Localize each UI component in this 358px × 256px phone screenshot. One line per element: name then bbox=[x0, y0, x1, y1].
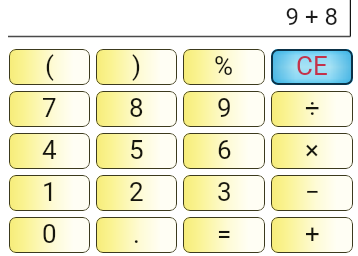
button[interactable]: 9 bbox=[183, 91, 265, 127]
staticText: 9 + 8 bbox=[285, 3, 338, 31]
staticText: 0 bbox=[42, 219, 57, 249]
staticText: × bbox=[305, 135, 319, 165]
staticText: 8 bbox=[129, 93, 144, 123]
staticText: + bbox=[305, 219, 320, 249]
button[interactable]: 1 bbox=[9, 175, 90, 211]
staticText: ) bbox=[132, 51, 142, 81]
staticText: 6 bbox=[217, 135, 232, 165]
button[interactable]: 7 bbox=[9, 91, 90, 127]
staticText: . bbox=[133, 219, 140, 249]
staticText: CE bbox=[296, 51, 328, 81]
staticText: − bbox=[305, 177, 320, 207]
staticText: 4 bbox=[42, 135, 57, 165]
button[interactable]: + bbox=[271, 217, 353, 253]
button[interactable]: 3 bbox=[183, 175, 265, 211]
staticText: ( bbox=[45, 51, 54, 81]
button[interactable]: 4 bbox=[9, 133, 90, 169]
button[interactable]: ) bbox=[96, 49, 177, 85]
staticText: ÷ bbox=[305, 93, 320, 123]
button[interactable]: ( bbox=[9, 49, 90, 85]
button[interactable]: 6 bbox=[183, 133, 265, 169]
staticText: 2 bbox=[129, 177, 144, 207]
button[interactable]: − bbox=[271, 175, 353, 211]
staticText: 1 bbox=[42, 177, 57, 207]
button[interactable]: ÷ bbox=[271, 91, 353, 127]
button[interactable]: . bbox=[96, 217, 177, 253]
button[interactable]: 2 bbox=[96, 175, 177, 211]
button[interactable]: = bbox=[183, 217, 265, 253]
staticText: = bbox=[217, 219, 232, 249]
staticText: 7 bbox=[42, 93, 57, 123]
button[interactable]: × bbox=[271, 133, 353, 169]
staticText: 5 bbox=[129, 135, 144, 165]
staticText: % bbox=[214, 51, 234, 81]
button[interactable]: CE bbox=[271, 49, 353, 85]
staticText: 9 bbox=[217, 93, 232, 123]
button[interactable]: 0 bbox=[9, 217, 90, 253]
staticText: 3 bbox=[217, 177, 232, 207]
button[interactable]: 8 bbox=[96, 91, 177, 127]
button[interactable]: % bbox=[183, 49, 265, 85]
button[interactable]: 5 bbox=[96, 133, 177, 169]
